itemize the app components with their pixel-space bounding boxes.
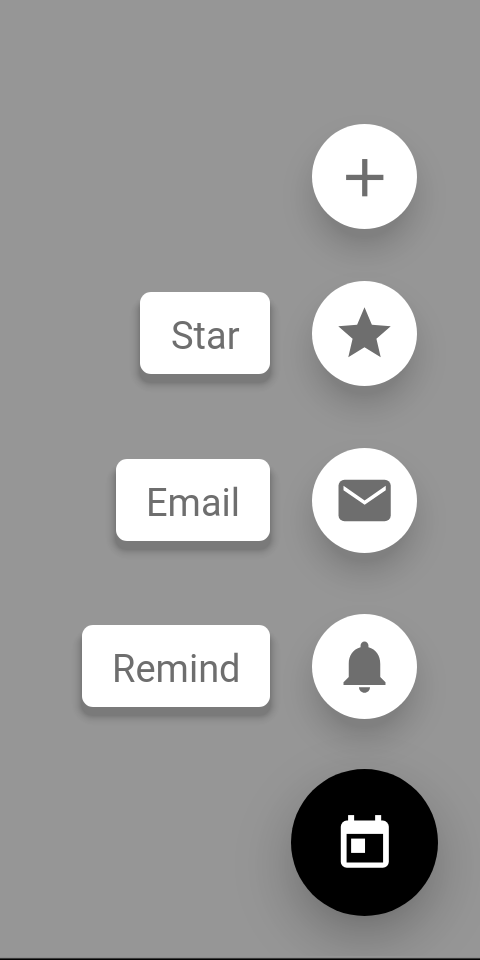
button[interactable]: Star	[312, 281, 417, 386]
button[interactable]: Remind	[312, 614, 417, 719]
staticText: Remind	[112, 647, 241, 692]
button[interactable]: Open calendar actions	[291, 769, 438, 916]
button[interactable]: Email	[116, 459, 270, 541]
button[interactable]: Add	[312, 124, 417, 229]
button[interactable]: Star	[140, 292, 270, 374]
staticText: Star	[171, 314, 240, 359]
button[interactable]: Remind	[82, 625, 270, 707]
staticText: Email	[146, 481, 241, 526]
button[interactable]: Email	[312, 448, 417, 553]
